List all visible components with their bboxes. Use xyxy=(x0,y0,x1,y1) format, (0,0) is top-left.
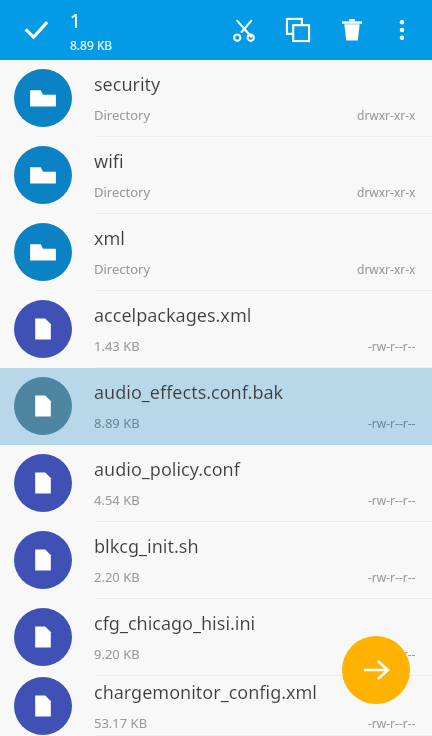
staticText: 1.43 KB xyxy=(94,337,140,355)
button[interactable]: blkcg_init.sh xyxy=(0,522,432,599)
staticText: 8.89 KB xyxy=(94,414,140,432)
staticText: drwxr-xr-x xyxy=(357,261,416,277)
button[interactable]: Delete xyxy=(328,6,376,54)
staticText: 8.89 KB xyxy=(70,37,113,53)
staticText: audio_policy.conf xyxy=(94,457,240,482)
button[interactable]: chargemonitor_config.xml xyxy=(0,676,432,736)
staticText: Directory xyxy=(94,183,151,201)
staticText: drwxr-xr-x xyxy=(357,107,416,123)
button[interactable]: Paste xyxy=(342,636,410,704)
staticText: -rw-r--r-- xyxy=(368,569,416,585)
staticText: wifi xyxy=(94,149,124,174)
button[interactable]: accelpackages.xml xyxy=(0,291,432,368)
button[interactable]: cfg_chicago_hisi.ini xyxy=(0,599,432,676)
staticText: chargemonitor_config.xml xyxy=(94,680,318,705)
button[interactable]: Copy xyxy=(274,6,322,54)
staticText: -rw-r--r-- xyxy=(368,338,416,354)
staticText: accelpackages.xml xyxy=(94,303,252,328)
staticText: drwxr-xr-x xyxy=(357,184,416,200)
staticText: Directory xyxy=(94,106,151,124)
button[interactable]: Cut xyxy=(220,6,268,54)
staticText: -rw-r--r-- xyxy=(368,492,416,508)
staticText: -rw-r--r-- xyxy=(368,415,416,431)
button[interactable]: audio_effects.conf.bak xyxy=(0,368,432,445)
staticText: audio_effects.conf.bak xyxy=(94,380,284,405)
staticText: xml xyxy=(94,226,125,251)
button[interactable]: audio_policy.conf xyxy=(0,445,432,522)
staticText: security xyxy=(94,72,161,97)
button[interactable]: More options xyxy=(378,6,426,54)
staticText: cfg_chicago_hisi.ini xyxy=(94,611,256,636)
staticText: 53.17 KB xyxy=(94,714,148,732)
button[interactable]: xml xyxy=(0,214,432,291)
staticText: -rw-r--r-- xyxy=(368,646,416,662)
staticText: 9.20 KB xyxy=(94,645,140,663)
button[interactable]: wifi xyxy=(0,137,432,214)
staticText: Directory xyxy=(94,260,151,278)
staticText: 2.20 KB xyxy=(94,568,140,586)
staticText: blkcg_init.sh xyxy=(94,534,199,559)
staticText: 4.54 KB xyxy=(94,491,140,509)
button[interactable]: security xyxy=(0,60,432,137)
staticText: -rw-r--r-- xyxy=(368,715,416,731)
button[interactable]: Done xyxy=(12,6,60,54)
staticText: 1 xyxy=(70,8,81,34)
